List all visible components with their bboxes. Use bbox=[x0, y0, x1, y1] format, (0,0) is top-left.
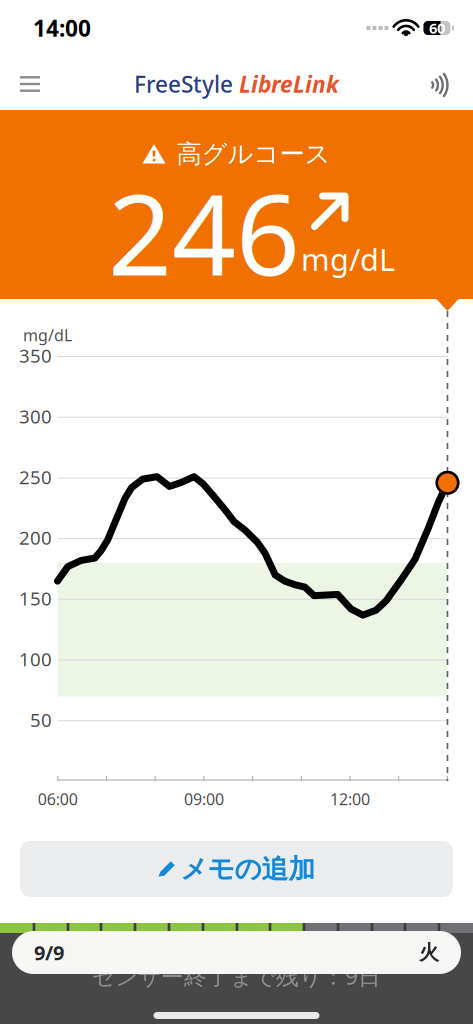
button[interactable]: Scan sensor bbox=[411, 60, 467, 108]
button[interactable]: メモの追加 bbox=[20, 841, 453, 897]
staticText: 火 bbox=[419, 940, 439, 965]
staticText: 14:00 bbox=[33, 13, 91, 43]
staticText: LibreLink bbox=[239, 69, 339, 99]
staticText: 250 bbox=[19, 464, 52, 489]
staticText: センサー終了まで残り：9日 bbox=[92, 961, 381, 991]
staticText: 09:00 bbox=[184, 788, 224, 810]
staticText: 150 bbox=[19, 586, 52, 611]
button[interactable]: Menu bbox=[2, 60, 58, 108]
staticText: 300 bbox=[19, 404, 52, 429]
staticText: 12:00 bbox=[330, 788, 370, 810]
staticText: FreeStyle bbox=[134, 69, 233, 99]
staticText: 200 bbox=[19, 525, 52, 550]
staticText: 246 bbox=[108, 158, 300, 306]
staticText: mg/dL bbox=[23, 324, 72, 346]
staticText: 高グルコース bbox=[176, 138, 330, 169]
staticText: 100 bbox=[19, 647, 52, 671]
staticText: 50 bbox=[30, 707, 52, 732]
staticText: 06:00 bbox=[38, 788, 78, 810]
staticText: 60 bbox=[429, 18, 445, 38]
staticText: 350 bbox=[19, 343, 52, 368]
staticText: 9/9 bbox=[34, 939, 64, 966]
staticText: mg/dL bbox=[301, 239, 395, 279]
staticText: メモの追加 bbox=[180, 853, 315, 885]
